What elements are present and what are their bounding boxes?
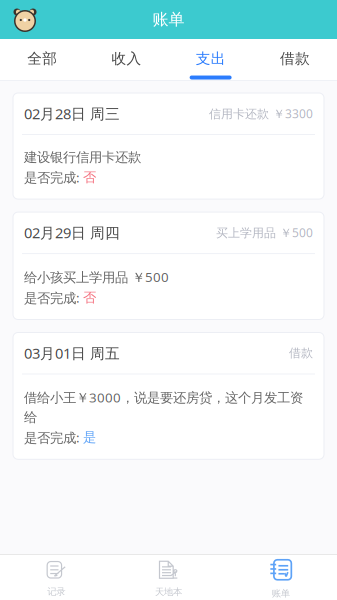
- button[interactable]: 天地本: [112, 555, 225, 600]
- button[interactable]: 账单: [225, 555, 337, 600]
- button[interactable]: 借款: [253, 39, 337, 80]
- button[interactable]: 02月28日 周三: [13, 93, 324, 199]
- staticText: 否: [83, 289, 96, 306]
- staticText: 借给小王￥3000，说是要还房贷，这个月发工资给: [24, 388, 303, 426]
- staticText: 给小孩买上学用品 ￥500: [24, 268, 169, 286]
- button[interactable]: 记录: [0, 555, 112, 600]
- staticText: 账单: [272, 588, 290, 599]
- staticText: 收入: [111, 49, 141, 67]
- staticText: 02月29日 周四: [24, 223, 120, 242]
- staticText: 支出: [196, 49, 226, 67]
- staticText: 02月28日 周三: [24, 104, 120, 123]
- button[interactable]: 全部: [0, 39, 84, 80]
- staticText: 否: [83, 169, 96, 185]
- button[interactable]: 03月01日 周五: [13, 332, 324, 459]
- staticText: 信用卡还款 ￥3300: [209, 105, 313, 121]
- staticText: 借款: [289, 346, 313, 360]
- staticText: 全部: [27, 49, 57, 67]
- staticText: 是否完成:: [24, 168, 83, 186]
- staticText: 天地本: [155, 586, 182, 598]
- staticText: 03月01日 周五: [24, 343, 120, 363]
- staticText: 记录: [47, 586, 65, 597]
- staticText: 买上学用品 ￥500: [216, 225, 313, 240]
- button[interactable]: 收入: [84, 39, 168, 80]
- staticText: 建设银行信用卡还款: [24, 149, 141, 165]
- button[interactable]: 02月29日 周四: [13, 212, 324, 319]
- staticText: 是否完成:: [24, 289, 83, 306]
- staticText: 借款: [280, 49, 310, 67]
- staticText: 是否完成:: [24, 429, 83, 446]
- staticText: 账单: [152, 10, 184, 29]
- button[interactable]: 支出: [168, 39, 253, 80]
- staticText: 是: [83, 429, 96, 446]
